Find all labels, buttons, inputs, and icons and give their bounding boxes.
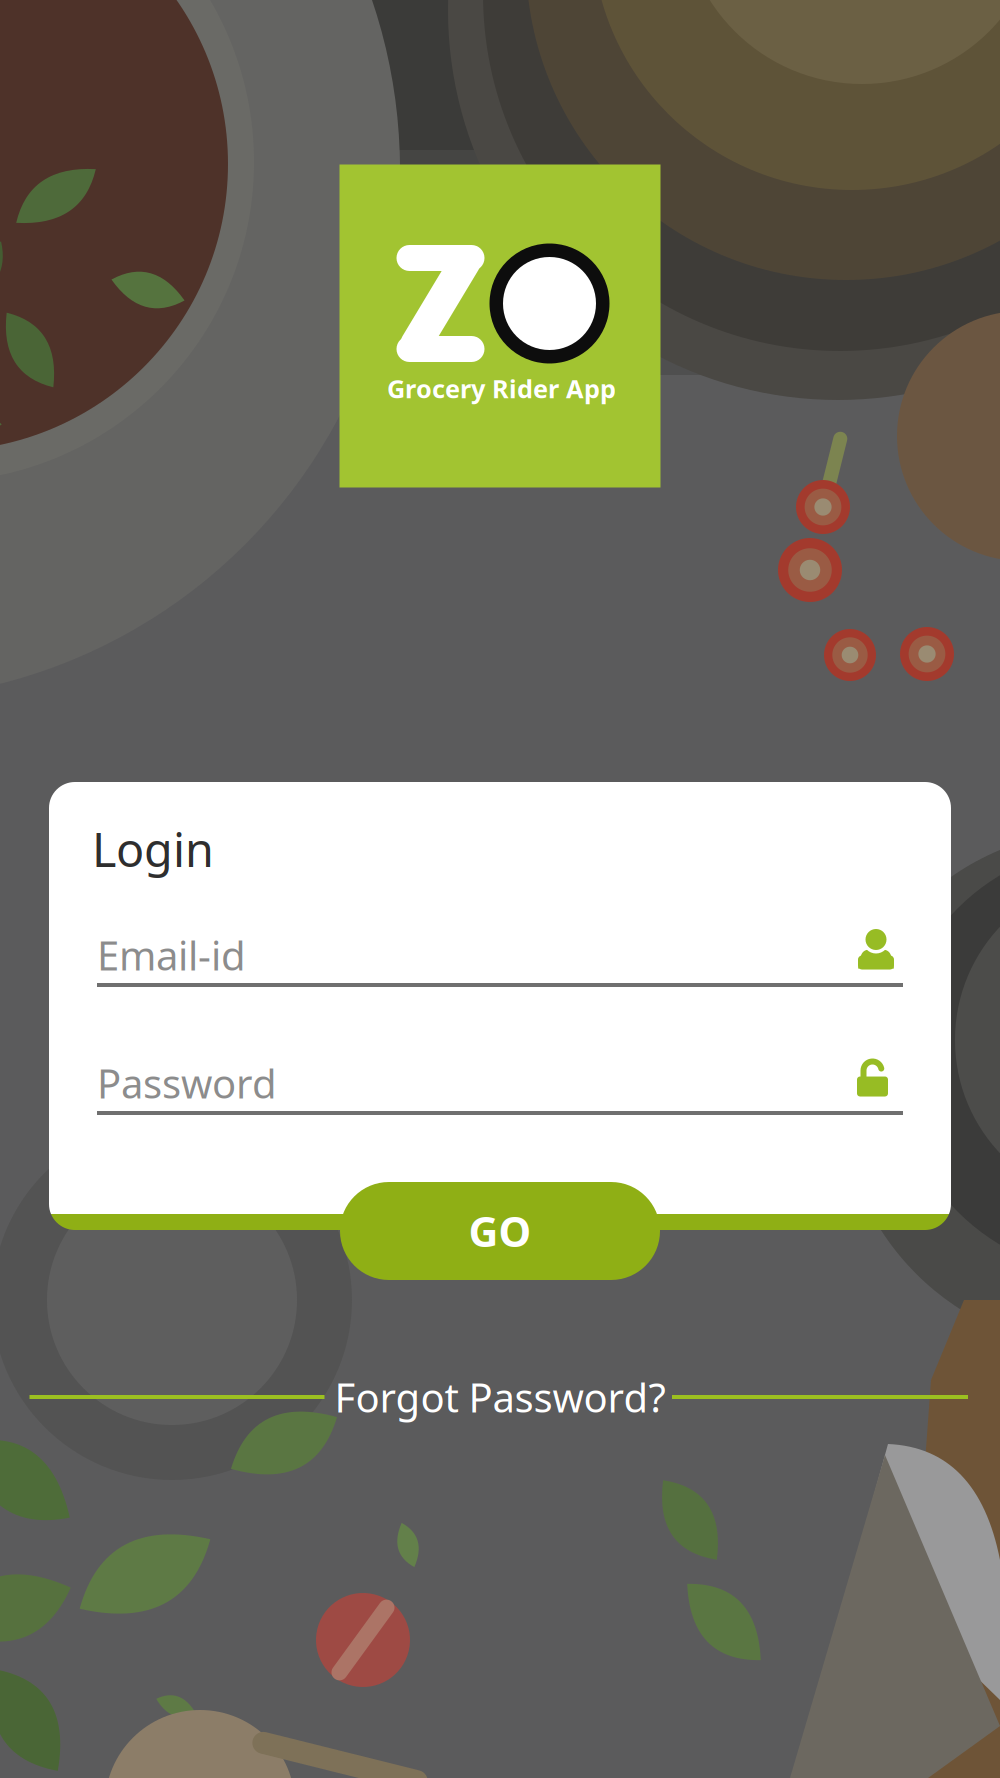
- staticText: Grocery Rider App: [387, 372, 616, 405]
- staticText: Password: [97, 1056, 277, 1109]
- button[interactable]: GO: [340, 1182, 660, 1280]
- staticText: Forgot Password?: [334, 1370, 665, 1423]
- staticText: Email-id: [97, 928, 246, 981]
- button[interactable]: Password: [49, 1051, 951, 1129]
- button[interactable]: Forgot Password?: [334, 1370, 665, 1423]
- staticText: Login: [92, 818, 214, 880]
- staticText: GO: [468, 1204, 531, 1258]
- button[interactable]: Email-id: [49, 923, 951, 1001]
